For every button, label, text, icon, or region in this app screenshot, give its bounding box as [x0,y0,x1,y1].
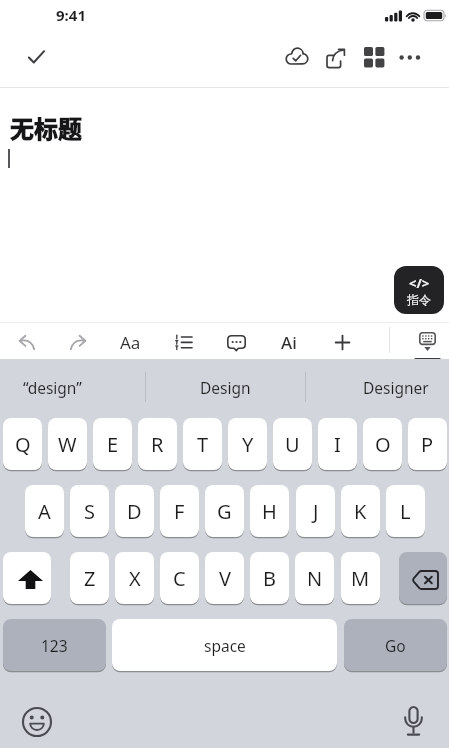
button[interactable]: E [93,418,132,470]
button[interactable]: T [183,418,222,470]
button[interactable] [325,328,359,357]
button[interactable]: 123 [3,619,106,671]
staticText: Design [200,377,251,398]
button[interactable]: Design [145,359,305,415]
staticText: B [263,565,276,592]
staticText: 123 [41,635,68,656]
button[interactable]: M [341,552,380,604]
button[interactable] [166,328,200,357]
staticText: Y [242,431,254,458]
button[interactable]: C [160,552,199,604]
button[interactable]: G [205,485,244,537]
button[interactable] [60,328,94,357]
button[interactable]: Go [344,619,447,671]
button[interactable]: B [250,552,289,604]
button[interactable]: Aa [113,327,147,357]
button[interactable] [281,42,313,72]
staticText: F [174,498,185,525]
button[interactable]: H [250,485,289,537]
button[interactable]: X [115,552,154,604]
button[interactable]: O [363,418,402,470]
button[interactable]: V [205,552,244,604]
staticText: X [129,565,141,592]
button[interactable]: “design” [0,359,145,415]
staticText: J [313,498,319,525]
staticText: E [107,431,119,458]
button[interactable]: L [386,485,425,537]
button[interactable]: I [318,418,357,470]
button[interactable]: W [48,418,87,470]
button[interactable]: U [273,418,312,470]
staticText: I [334,431,341,458]
button[interactable]: R [138,418,177,470]
staticText: D [127,498,142,525]
button[interactable]: Ai [272,327,306,357]
staticText: R [151,431,164,458]
button[interactable] [319,42,351,72]
button[interactable]: D [115,485,154,537]
staticText: Q [15,431,31,458]
staticText: C [173,565,186,592]
staticText: Aa [120,331,141,354]
staticText: 9:41 [56,5,86,25]
button[interactable]: Designer [305,359,449,415]
button[interactable] [20,705,54,739]
staticText: Ai [281,331,297,354]
button[interactable] [396,703,430,739]
staticText: Go [385,635,406,656]
button[interactable]: F [160,485,199,537]
staticText: </> [409,274,430,292]
button[interactable]: space [112,619,337,671]
staticText: O [375,431,391,458]
staticText: Z [84,565,96,592]
button[interactable]: Z [70,552,109,604]
button[interactable]: </> [394,266,444,314]
button[interactable]: N [295,552,334,604]
staticText: N [307,565,323,592]
button[interactable] [358,42,390,72]
staticText: V [219,565,231,592]
button[interactable] [10,328,44,357]
staticText: A [38,498,51,525]
button[interactable] [219,328,253,357]
staticText: 指令 [407,292,431,307]
button[interactable] [399,552,447,604]
button[interactable] [14,42,58,72]
button[interactable] [396,42,424,72]
button[interactable] [3,552,51,604]
staticText: L [400,498,411,525]
button[interactable]: Y [228,418,267,470]
button[interactable] [410,327,444,356]
staticText: U [285,431,300,458]
staticText: P [421,431,434,458]
button[interactable]: K [341,485,380,537]
staticText: W [58,431,77,458]
staticText: K [354,498,367,525]
staticText: Designer [363,377,429,398]
staticText: M [351,565,370,592]
staticText: H [262,498,277,525]
button[interactable]: A [25,485,64,537]
button[interactable]: J [296,485,335,537]
staticText: S [84,498,95,525]
staticText: 无标题 [10,110,82,145]
staticText: T [197,431,209,458]
staticText: space [204,635,246,656]
button[interactable]: S [70,485,109,537]
button[interactable]: P [408,418,447,470]
staticText: G [217,498,232,525]
staticText: “design” [23,377,82,398]
button[interactable]: Q [3,418,42,470]
